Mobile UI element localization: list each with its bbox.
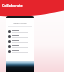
button[interactable]	[6, 44, 34, 49]
staticText: Recent chats	[6, 22, 34, 25]
button[interactable]	[6, 29, 34, 34]
button[interactable]	[6, 34, 34, 39]
staticText: Collaborate	[2, 3, 23, 8]
button[interactable]	[6, 49, 34, 54]
button[interactable]	[6, 39, 34, 44]
